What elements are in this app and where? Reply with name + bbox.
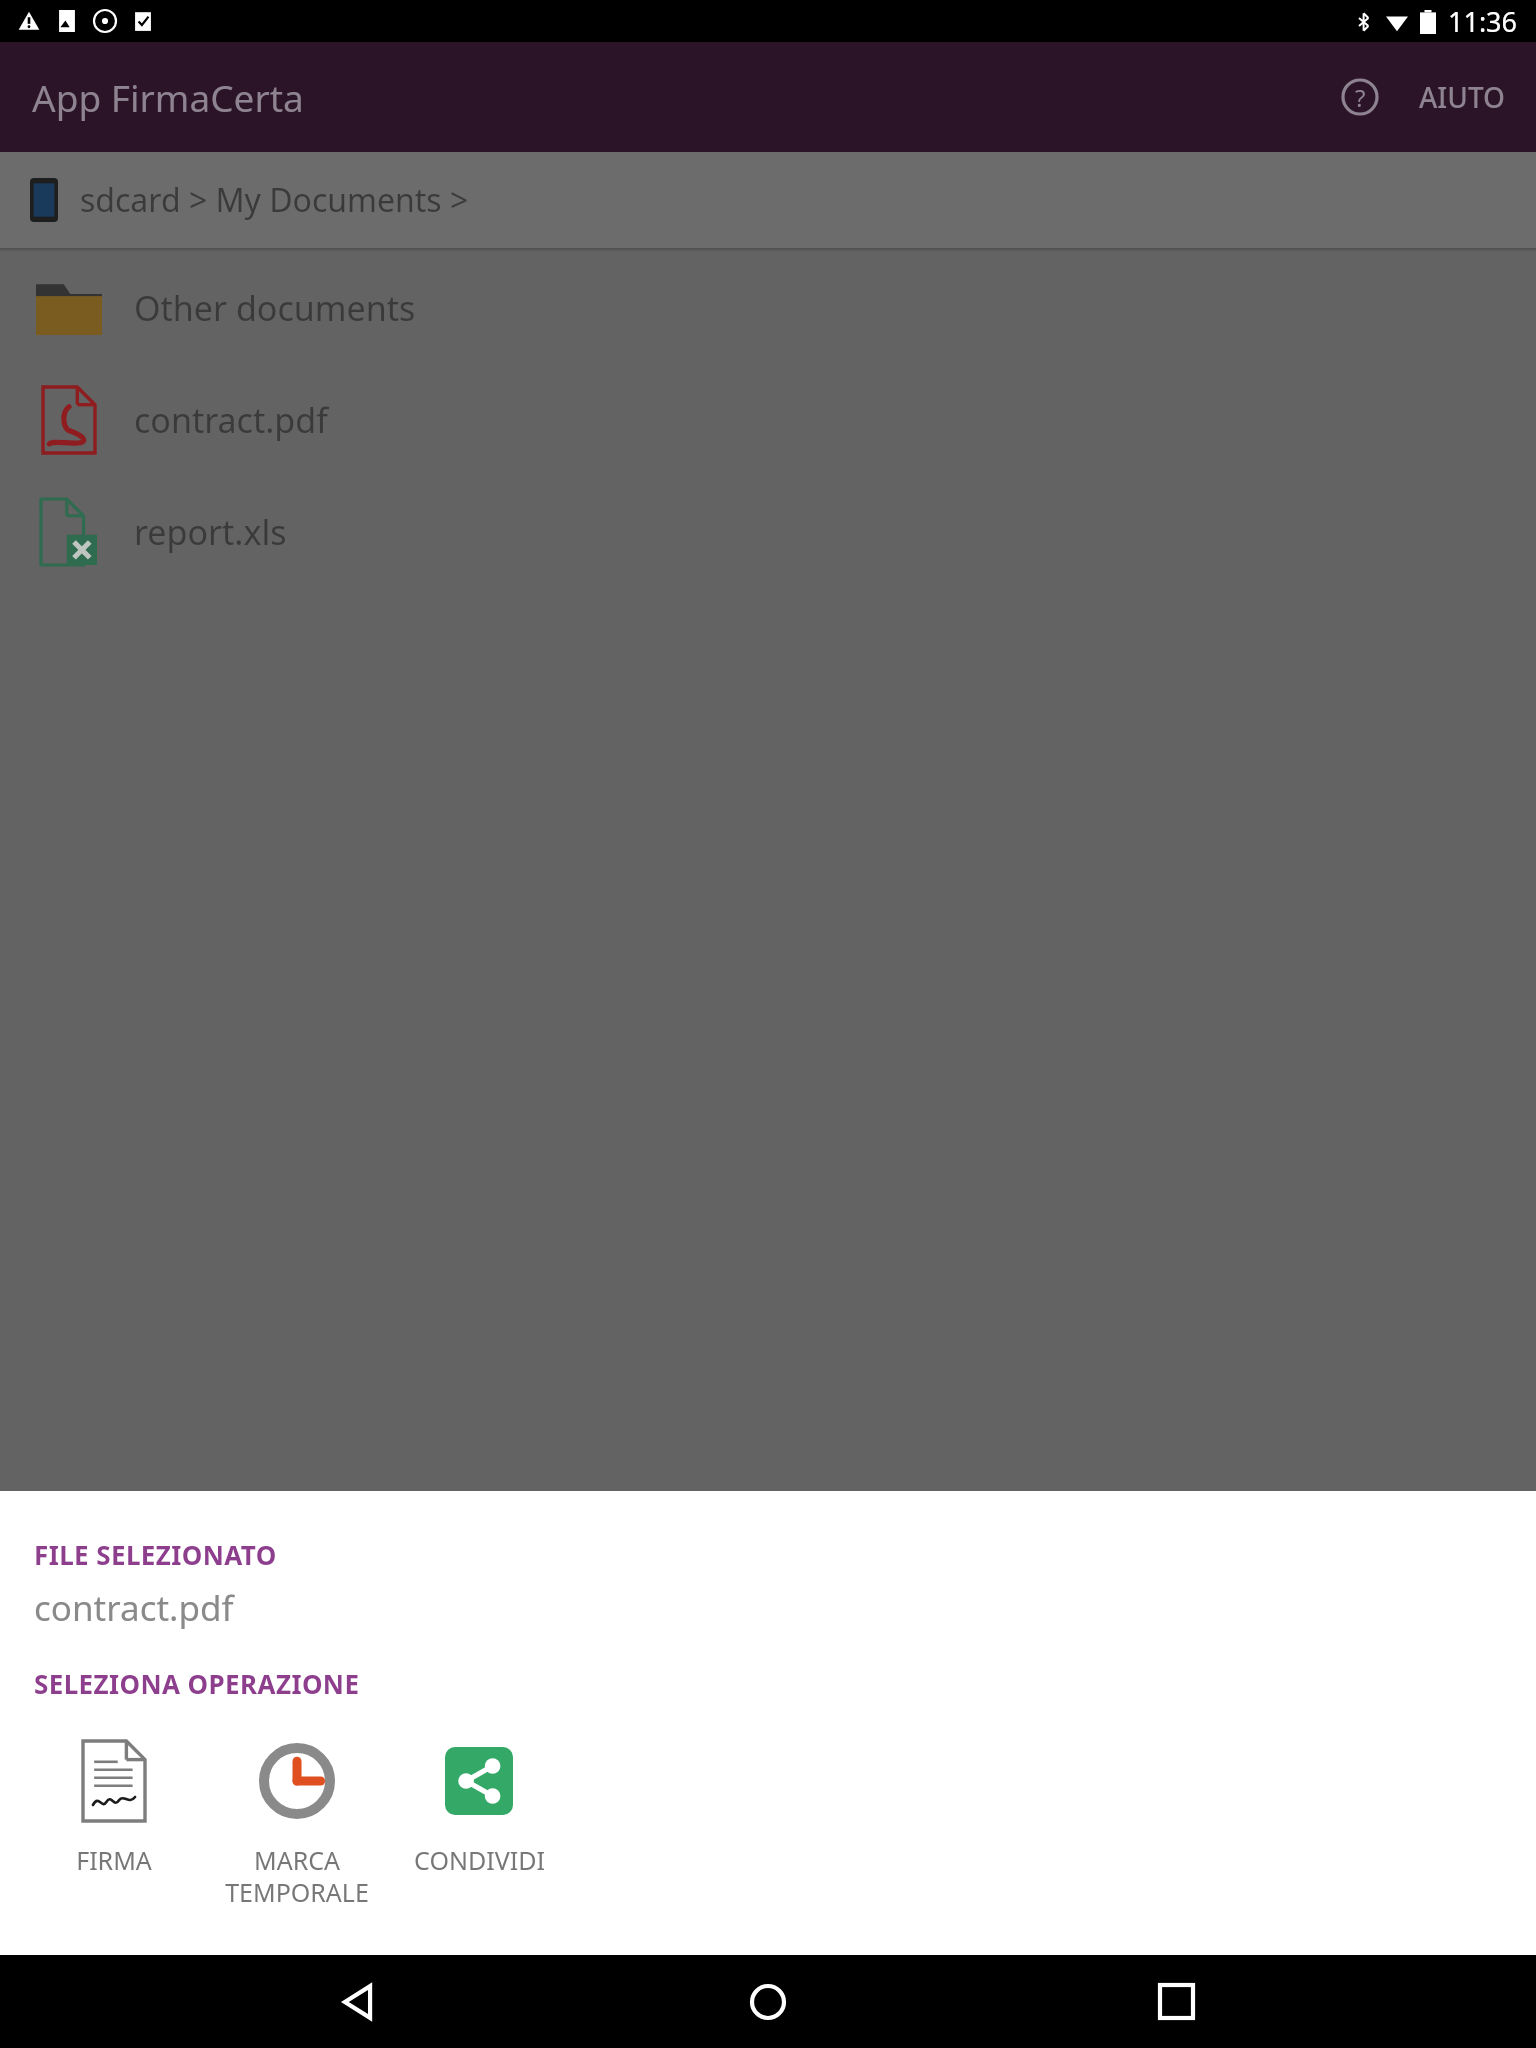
button[interactable]: sdcard > My Documents > <box>0 152 1536 248</box>
staticText: 11:36 <box>1448 3 1518 40</box>
staticText: MARCA TEMPORALE <box>225 1843 369 1909</box>
staticText: FILE SELEZIONATO <box>34 1537 277 1572</box>
staticText: App FirmaCerta <box>32 72 304 122</box>
staticText: AIUTO <box>1419 78 1506 116</box>
button[interactable]: Recent apps <box>1128 1955 1224 2048</box>
button[interactable]: Home <box>720 1955 816 2048</box>
staticText: CONDIVIDI <box>414 1843 545 1877</box>
staticText: sdcard > My Documents > <box>80 178 469 222</box>
staticText: report.xls <box>134 509 287 555</box>
staticText: ? <box>1355 81 1366 114</box>
button[interactable]: Back <box>312 1955 408 2048</box>
button[interactable]: report.xls <box>0 476 1536 588</box>
button[interactable]: CONDIVIDI <box>399 1727 559 1883</box>
staticText: FIRMA <box>76 1843 152 1877</box>
button[interactable]: FIRMA <box>34 1727 194 1883</box>
staticText: contract.pdf <box>134 397 328 443</box>
staticText: SELEZIONA OPERAZIONE <box>34 1666 360 1701</box>
button[interactable]: Other documents <box>0 252 1536 364</box>
staticText: contract.pdf <box>34 1584 234 1632</box>
button[interactable]: contract.pdf <box>0 364 1536 476</box>
staticText: Other documents <box>134 285 416 331</box>
button[interactable]: ? <box>1333 70 1514 124</box>
button[interactable]: MARCA TEMPORALE <box>194 1727 399 1915</box>
